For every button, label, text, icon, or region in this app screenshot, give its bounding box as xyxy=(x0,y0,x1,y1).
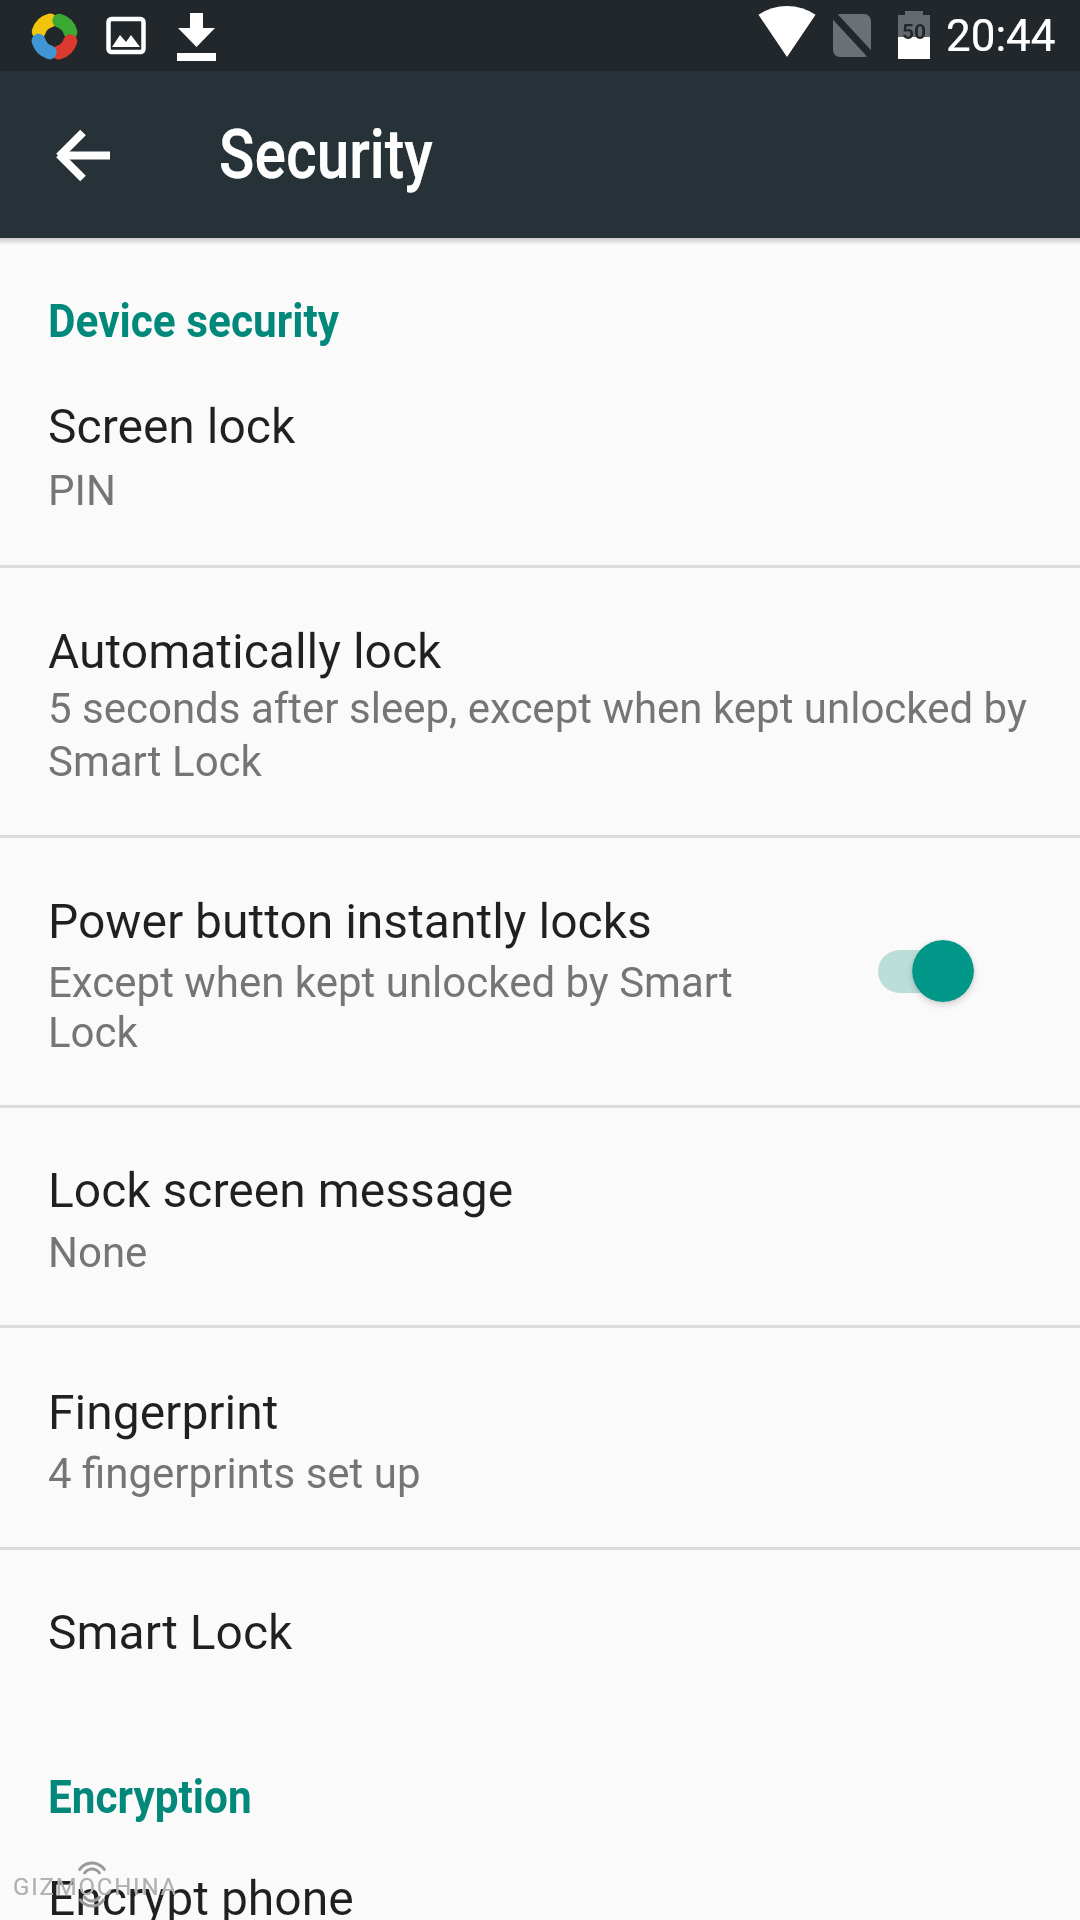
staticText: 5 seconds after sleep, except when kept … xyxy=(48,684,1027,733)
button[interactable]: Smart Lock xyxy=(0,1550,1080,1715)
button[interactable]: Fingerprint xyxy=(0,1328,1080,1547)
staticText: None xyxy=(48,1228,148,1277)
staticText: Screen lock xyxy=(48,398,296,454)
staticText: Lock xyxy=(48,1008,138,1057)
staticText: Fingerprint xyxy=(48,1384,279,1440)
staticText: PIN xyxy=(48,466,116,515)
staticText: Power button instantly locks xyxy=(48,893,652,949)
button[interactable]: Automatically lock xyxy=(0,568,1080,835)
staticText: Automatically lock xyxy=(48,623,442,679)
staticText: Smart Lock xyxy=(48,737,262,786)
staticText: Except when kept unlocked by Smart xyxy=(48,958,733,1007)
button[interactable]: Encrypt phone xyxy=(0,1858,1080,1920)
staticText: Device security xyxy=(48,294,340,348)
staticText: Lock screen message xyxy=(48,1162,514,1218)
staticText: GIZMOCHINA xyxy=(13,1873,178,1901)
button[interactable]: Power button instantly locks xyxy=(0,838,1080,1105)
staticText: Security xyxy=(219,114,433,195)
button[interactable] xyxy=(35,105,135,205)
staticText: 4 fingerprints set up xyxy=(48,1449,421,1498)
staticText: Encrypt phone xyxy=(48,1870,354,1920)
button[interactable]: Lock screen message xyxy=(0,1108,1080,1325)
staticText: Encryption xyxy=(48,1770,252,1824)
button[interactable]: Screen lock xyxy=(0,360,1080,565)
staticText: 50 xyxy=(902,20,927,45)
staticText: Smart Lock xyxy=(48,1604,293,1660)
staticText: 20:44 xyxy=(946,10,1056,62)
